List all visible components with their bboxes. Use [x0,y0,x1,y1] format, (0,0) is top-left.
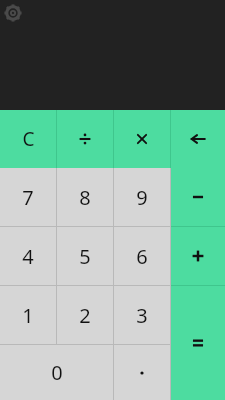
staticText: 6 [136,243,148,270]
button[interactable]: C [0,110,56,168]
button[interactable]: 8 [57,168,113,226]
staticText: 8 [79,184,91,211]
button[interactable]: Minus [171,168,225,226]
button[interactable]: 5 [57,227,113,285]
staticText: 7 [22,184,34,211]
button[interactable]: 4 [0,227,56,285]
button[interactable]: 1 [0,286,56,344]
staticText: 0 [51,359,63,386]
button[interactable]: 2 [57,286,113,344]
staticText: 3 [136,302,148,329]
staticText: 9 [136,184,148,211]
button[interactable]: 3 [114,286,170,344]
button[interactable]: Divide [57,110,113,168]
button[interactable]: 9 [114,168,170,226]
button[interactable]: Equals [171,286,225,400]
button[interactable]: 0 [0,345,113,400]
staticText: 4 [22,243,34,270]
button[interactable]: Settings [0,0,26,26]
button[interactable]: Backspace [171,110,225,168]
button[interactable]: 6 [114,227,170,285]
button[interactable]: 7 [0,168,56,226]
button[interactable]: Plus [171,227,225,285]
staticText: 5 [79,243,91,270]
button[interactable]: Decimal point [114,345,170,400]
staticText: 1 [22,302,34,329]
staticText: 2 [79,302,91,329]
staticText: C [22,126,35,152]
button[interactable]: Multiply [114,110,170,168]
